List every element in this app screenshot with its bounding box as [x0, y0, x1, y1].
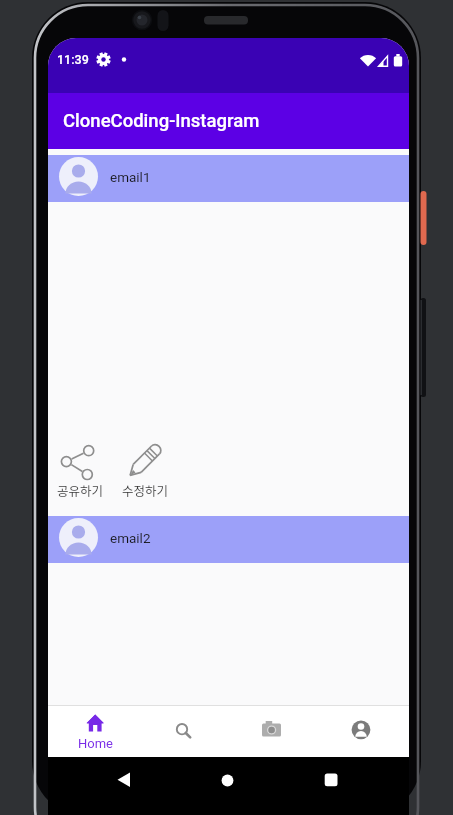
- button[interactable]: Home: [48, 706, 138, 757]
- button[interactable]: [228, 706, 318, 757]
- button[interactable]: email1: [48, 155, 409, 202]
- button[interactable]: [311, 764, 351, 796]
- staticText: 수정하기: [122, 481, 169, 499]
- button[interactable]: 공유하기: [53, 437, 108, 503]
- staticText: CloneCoding-Instagram: [63, 110, 260, 132]
- staticText: Home: [78, 736, 113, 751]
- staticText: 11:39: [57, 52, 89, 67]
- staticText: email2: [110, 530, 151, 546]
- button[interactable]: [138, 706, 228, 757]
- staticText: email1: [110, 169, 151, 185]
- button[interactable]: email2: [48, 516, 409, 563]
- button[interactable]: [104, 764, 144, 796]
- staticText: 공유하기: [57, 481, 104, 499]
- button[interactable]: [318, 706, 408, 757]
- button[interactable]: [207, 764, 247, 796]
- button[interactable]: 수정하기: [118, 437, 173, 503]
